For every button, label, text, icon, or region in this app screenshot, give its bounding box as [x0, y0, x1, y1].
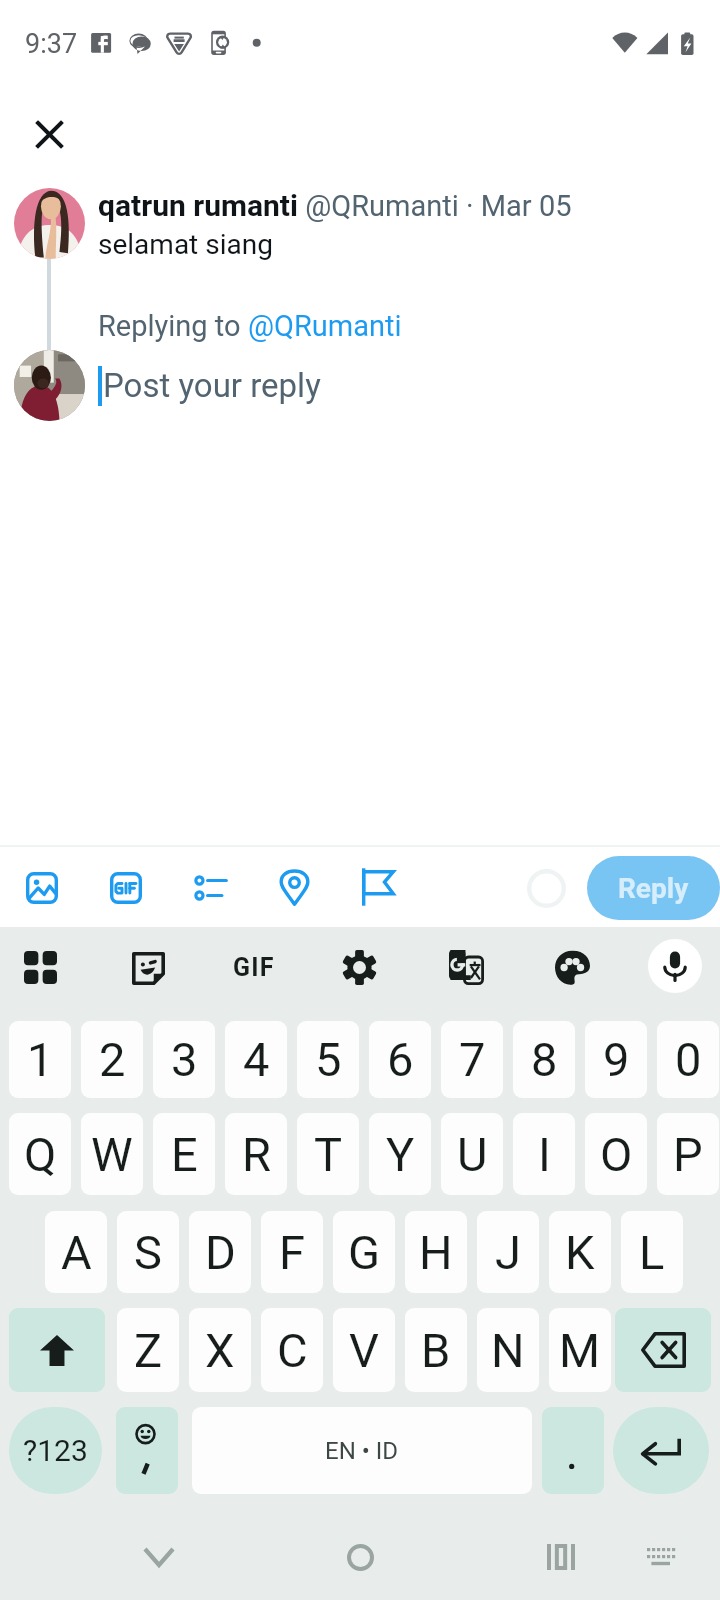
staticText: Z	[134, 1323, 163, 1378]
staticText: D	[205, 1225, 236, 1280]
button[interactable]: D	[189, 1211, 251, 1293]
button[interactable]: Recent apps	[521, 1522, 601, 1592]
button[interactable]: Translate	[437, 938, 495, 996]
button[interactable]: Shift	[9, 1308, 105, 1392]
button[interactable]: Backspace	[615, 1308, 711, 1392]
staticText: I	[538, 1127, 551, 1182]
staticText: R	[242, 1127, 271, 1182]
button[interactable]: Z	[117, 1308, 179, 1392]
button[interactable]: Emoji	[116, 1407, 178, 1494]
button[interactable]: Close	[13, 97, 85, 169]
staticText: GIF	[233, 953, 275, 982]
staticText: Replying to	[98, 309, 248, 343]
button[interactable]: V	[333, 1308, 395, 1392]
staticText: V	[349, 1323, 379, 1378]
button[interactable]: A	[45, 1211, 107, 1293]
button[interactable]: K	[549, 1211, 611, 1293]
button[interactable]: Your avatar	[14, 350, 85, 421]
button[interactable]: 9	[585, 1021, 647, 1098]
button[interactable]: Voice input	[648, 939, 702, 993]
button[interactable]: GIF keyboard	[225, 938, 283, 996]
button[interactable]: Period	[542, 1407, 604, 1494]
button[interactable]: C	[261, 1308, 323, 1392]
button[interactable]: 7	[441, 1021, 503, 1098]
staticText: H	[419, 1225, 453, 1280]
button[interactable]: Enter	[613, 1407, 709, 1494]
button[interactable]: ?123	[9, 1407, 102, 1494]
button[interactable]: qatrun rumanti avatar	[14, 188, 85, 259]
staticText: C	[277, 1323, 308, 1378]
button[interactable]: 0	[657, 1021, 719, 1098]
button[interactable]: Reply	[587, 856, 720, 920]
staticText: 2	[99, 1032, 126, 1087]
staticText: B	[421, 1323, 451, 1378]
button[interactable]: L	[621, 1211, 683, 1293]
button[interactable]: E	[153, 1113, 215, 1195]
staticText: @QRumanti	[248, 309, 402, 343]
button[interactable]: Add GIF	[110, 872, 142, 904]
button[interactable]: B	[405, 1308, 467, 1392]
staticText: 5	[315, 1032, 342, 1087]
staticText: EN • ID	[325, 1437, 399, 1465]
staticText: O	[600, 1127, 633, 1182]
button[interactable]: Keyboard theme	[543, 938, 601, 996]
button[interactable]: X	[189, 1308, 251, 1392]
button[interactable]: Hide keyboard	[621, 1522, 701, 1592]
button[interactable]: G	[333, 1211, 395, 1293]
button[interactable]: Character count	[527, 869, 566, 908]
button[interactable]: 6	[369, 1021, 431, 1098]
staticText: G	[348, 1225, 381, 1280]
button[interactable]: J	[477, 1211, 539, 1293]
staticText: 7	[459, 1032, 486, 1087]
staticText: F	[279, 1225, 305, 1280]
staticText: qatrun rumanti	[98, 188, 298, 223]
staticText: 3	[171, 1032, 198, 1087]
button[interactable]: U	[441, 1113, 503, 1195]
button[interactable]: O	[585, 1113, 647, 1195]
button[interactable]: Keyboard apps	[11, 938, 70, 997]
button[interactable]: T	[297, 1113, 359, 1195]
button[interactable]: 2	[81, 1021, 143, 1098]
button[interactable]: I	[513, 1113, 575, 1195]
button[interactable]: N	[477, 1308, 539, 1392]
staticText: P	[673, 1127, 703, 1182]
button[interactable]: S	[117, 1211, 179, 1293]
staticText: selamat siang	[98, 228, 273, 261]
staticText: J	[495, 1225, 521, 1280]
staticText: Y	[386, 1127, 415, 1182]
button[interactable]: Y	[369, 1113, 431, 1195]
staticText: 0	[675, 1032, 702, 1087]
button[interactable]: W	[81, 1113, 143, 1195]
button[interactable]: 8	[513, 1021, 575, 1098]
button[interactable]: Add photo	[26, 872, 58, 904]
button[interactable]: R	[225, 1113, 287, 1195]
button[interactable]: Back	[119, 1522, 199, 1592]
button[interactable]: Home	[320, 1522, 400, 1592]
button[interactable]: 1	[9, 1021, 71, 1098]
staticText: 9:37	[25, 28, 78, 60]
staticText: T	[314, 1127, 343, 1182]
button[interactable]: 3	[153, 1021, 215, 1098]
button[interactable]: Replying to	[98, 309, 402, 343]
staticText: 6	[387, 1032, 414, 1087]
staticText: ?123	[23, 1433, 88, 1468]
button[interactable]: Choose community	[362, 870, 395, 904]
staticText: E	[171, 1127, 198, 1182]
button[interactable]: Add poll	[194, 871, 228, 905]
staticText: Post your reply	[103, 366, 321, 405]
button[interactable]: M	[549, 1308, 611, 1392]
button[interactable]: Stickers	[118, 938, 178, 998]
button[interactable]: Q	[9, 1113, 71, 1195]
staticText: 1	[27, 1032, 54, 1087]
button[interactable]: P	[657, 1113, 719, 1195]
staticText: M	[559, 1323, 601, 1378]
button[interactable]: Keyboard settings	[330, 938, 389, 997]
staticText: S	[134, 1225, 162, 1280]
button[interactable]: H	[405, 1211, 467, 1293]
button[interactable]: F	[261, 1211, 323, 1293]
button[interactable]: EN • ID	[192, 1407, 532, 1494]
button[interactable]: 4	[225, 1021, 287, 1098]
button[interactable]: Tag location	[280, 870, 309, 905]
staticText: W	[91, 1127, 133, 1182]
button[interactable]: 5	[297, 1021, 359, 1098]
